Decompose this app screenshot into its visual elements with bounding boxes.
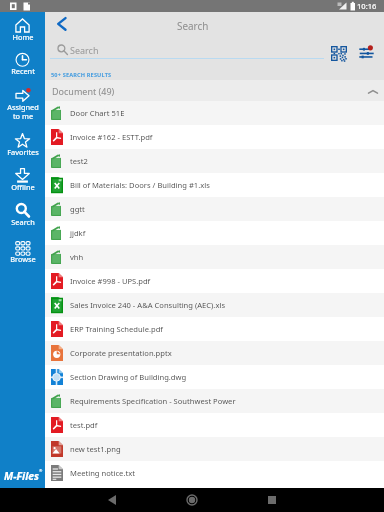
staticText: Sales Invoice 240 - A&A Consulting (AEC)…: [70, 300, 226, 310]
button[interactable]: Recent: [0, 52, 45, 77]
staticText: jjdkf: [70, 228, 86, 238]
staticText: Bill of Materials: Doors / Building #1.x…: [70, 180, 210, 190]
button[interactable]: Favorites: [0, 133, 45, 158]
staticText: Invoice #162 - ESTT.pdf: [70, 132, 153, 142]
button[interactable]: Browse: [0, 240, 45, 265]
button[interactable]: Requirements Specification - Southwest P…: [45, 389, 384, 413]
staticText: M-Files: [4, 469, 39, 483]
button[interactable]: ggtt: [45, 197, 384, 221]
staticText: Meeting notice.txt: [70, 468, 135, 478]
staticText: Assigned to me: [7, 102, 39, 121]
button[interactable]: vhh: [45, 245, 384, 269]
staticText: Recent: [11, 66, 35, 76]
button[interactable]: new test1.png: [45, 437, 384, 461]
staticText: Requirements Specification - Southwest P…: [70, 396, 236, 406]
staticText: Browse: [10, 254, 36, 264]
staticText: Offline: [11, 182, 35, 192]
button[interactable]: Assigned to me: [0, 88, 45, 121]
button[interactable]: Scan QR code: [331, 46, 347, 61]
button[interactable]: Corporate presentation.pptx: [45, 341, 384, 365]
staticText: 10:16: [357, 1, 377, 11]
button[interactable]: Filter results: [359, 44, 374, 60]
staticText: 50+ SEARCH RESULTS: [51, 71, 112, 79]
button[interactable]: Offline: [0, 168, 45, 193]
staticText: Search: [177, 19, 209, 32]
staticText: Search: [11, 217, 35, 227]
button[interactable]: Document (49): [45, 80, 384, 101]
staticText: test.pdf: [70, 420, 98, 430]
button[interactable]: Home: [0, 18, 45, 43]
button[interactable]: jjdkf: [45, 221, 384, 245]
staticText: Invoice #998 - UPS.pdf: [70, 276, 151, 286]
staticText: Door Chart 51E: [70, 108, 125, 118]
staticText: Document (49): [52, 85, 115, 97]
staticText: ERP Training Schedule.pdf: [70, 324, 163, 334]
staticText: Home: [12, 32, 34, 42]
staticText: vhh: [70, 252, 84, 262]
button[interactable]: test2: [45, 149, 384, 173]
button[interactable]: Meeting notice.txt: [45, 461, 384, 485]
staticText: test2: [70, 156, 88, 166]
button[interactable]: Door Chart 51E: [45, 101, 384, 125]
staticText: new test1.png: [70, 444, 121, 454]
staticText: Favorites: [7, 147, 39, 157]
button[interactable]: Back: [49, 13, 73, 37]
button[interactable]: Sales Invoice 240 - A&A Consulting (AEC)…: [45, 293, 384, 317]
button[interactable]: ERP Training Schedule.pdf: [45, 317, 384, 341]
staticText: ®: [39, 468, 43, 473]
staticText: Search: [70, 44, 99, 56]
button[interactable]: test.pdf: [45, 413, 384, 437]
staticText: Section Drawing of Building.dwg: [70, 372, 187, 382]
button[interactable]: Invoice #162 - ESTT.pdf: [45, 125, 384, 149]
button[interactable]: Bill of Materials: Doors / Building #1.x…: [45, 173, 384, 197]
button[interactable]: Invoice #998 - UPS.pdf: [45, 269, 384, 293]
button[interactable]: Section Drawing of Building.dwg: [45, 365, 384, 389]
staticText: ggtt: [70, 204, 85, 214]
button[interactable]: Search: [0, 203, 45, 228]
staticText: Corporate presentation.pptx: [70, 348, 172, 358]
